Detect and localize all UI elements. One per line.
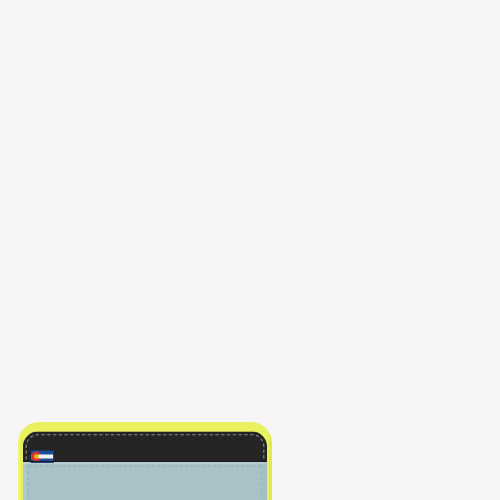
button[interactable]: Wallet with Colorado ID card [0,0,500,500]
